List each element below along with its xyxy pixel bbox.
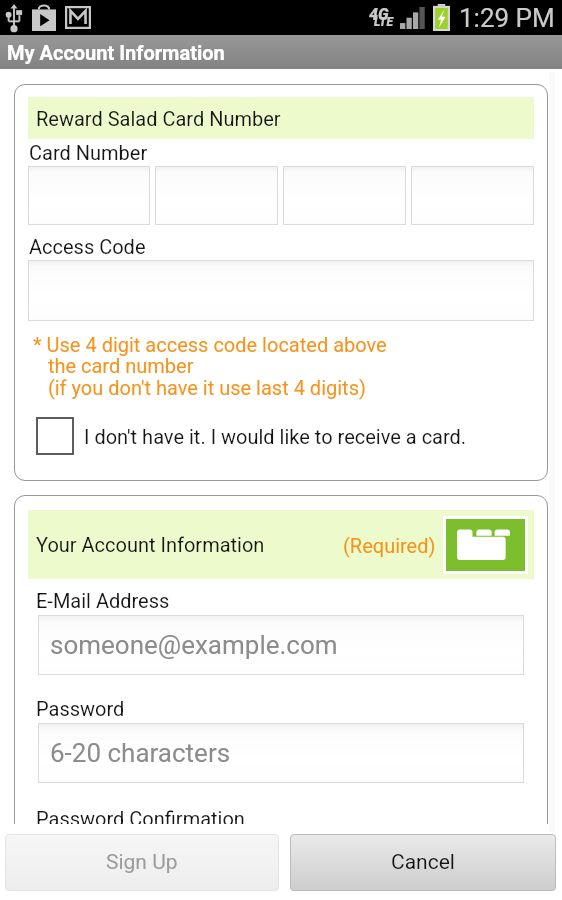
button[interactable]: Salad card — [446, 519, 525, 571]
button[interactable]: Sign Up — [5, 834, 279, 891]
button[interactable] — [283, 166, 406, 225]
staticText: Your Account Information — [36, 533, 265, 556]
staticText: Password Confirmation — [36, 807, 245, 824]
staticText: Reward Salad Card Number — [36, 107, 281, 130]
button[interactable]: someone@example.com — [38, 615, 524, 675]
staticText: My Account Information — [7, 41, 225, 64]
staticText: * Use 4 digit access code located above … — [33, 333, 387, 400]
button[interactable] — [155, 166, 278, 225]
staticText: Cancel — [391, 850, 455, 875]
staticText: 1:29 PM — [459, 3, 555, 33]
button[interactable]: I don't have it. I would like to receive… — [28, 417, 534, 455]
staticText: 4G — [369, 5, 389, 24]
staticText: Sign Up — [106, 850, 178, 875]
button[interactable]: 6-20 characters — [38, 723, 524, 783]
staticText: Card Number — [29, 141, 148, 164]
staticText: E-Mail Address — [36, 589, 170, 612]
button[interactable] — [28, 260, 534, 321]
staticText: (Required) — [343, 534, 436, 557]
button[interactable] — [28, 166, 150, 225]
staticText: I don't have it. I would like to receive… — [84, 425, 467, 448]
staticText: Access Code — [29, 235, 146, 258]
staticText: 6-20 characters — [50, 738, 231, 768]
button[interactable] — [411, 166, 534, 225]
staticText: LTE — [374, 15, 393, 29]
button[interactable]: Cancel — [290, 834, 556, 891]
staticText: someone@example.com — [50, 630, 338, 660]
staticText: Password — [36, 697, 125, 720]
